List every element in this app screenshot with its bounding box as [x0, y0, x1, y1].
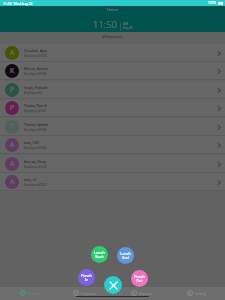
- staticText: T: [10, 122, 14, 132]
- staticText: 100%: [208, 1, 217, 5]
- button[interactable]: A: [0, 44, 225, 62]
- button[interactable]: P: [0, 99, 225, 117]
- staticText: Employee #1053: [24, 54, 47, 58]
- button[interactable]: A: [0, 136, 225, 154]
- staticText: Singh, Prakash: [24, 85, 48, 90]
- staticText: Employee #1029: [24, 183, 47, 187]
- staticText: aray, uT: [24, 177, 37, 182]
- staticText: 11:50 Wed Aug 28: [3, 1, 33, 6]
- staticText: Setting: [195, 291, 207, 296]
- button[interactable]: Lunch End: [117, 247, 134, 264]
- staticText: 11:50: [93, 18, 118, 31]
- staticText: Home: [107, 7, 118, 12]
- staticText: Punch In: [81, 273, 92, 282]
- staticText: Employee #1042: [24, 146, 47, 150]
- button[interactable]: A: [0, 173, 225, 191]
- staticText: A: [10, 177, 15, 187]
- staticText: Anurag, Bisoy: [24, 159, 46, 164]
- staticText: Chauhan, Ajay: [24, 48, 47, 53]
- button[interactable]: Setting: [169, 287, 225, 300]
- staticText: K: [10, 66, 15, 76]
- staticText: P: [10, 85, 15, 95]
- staticText: Aug 28: [123, 26, 133, 30]
- button[interactable]: P: [0, 81, 225, 99]
- button[interactable]: Punch Out: [131, 270, 148, 287]
- staticText: Lunch End: [120, 251, 131, 260]
- button[interactable]: Reports: [113, 287, 169, 300]
- button[interactable]: A: [0, 155, 225, 173]
- staticText: Employee #1046: [24, 128, 47, 132]
- button[interactable]: Home: [0, 287, 57, 300]
- button[interactable]: K: [0, 62, 225, 80]
- staticText: Employee: [81, 291, 97, 296]
- staticText: Punch Out: [134, 274, 145, 283]
- staticText: A: [10, 48, 15, 58]
- staticText: Employee #2: [24, 91, 42, 95]
- staticText: Employee #1044: [24, 72, 47, 76]
- staticText: Reports: [139, 291, 152, 296]
- staticText: Lunch Start: [94, 250, 105, 259]
- staticText: All Employees: [102, 35, 123, 39]
- button[interactable]: Lunch Start: [91, 246, 108, 263]
- staticText: AM: [123, 21, 129, 26]
- staticText: Employee #1041: [24, 109, 47, 113]
- button[interactable]: Employee: [57, 287, 113, 300]
- staticText: P: [10, 103, 15, 113]
- staticText: Home: [28, 291, 38, 296]
- staticText: Thakur, Piyush: [24, 103, 47, 108]
- button[interactable]: Close menu: [104, 276, 122, 294]
- staticText: aray, CEO: [24, 140, 40, 145]
- button[interactable]: Punch In: [78, 269, 95, 286]
- staticText: A: [10, 140, 15, 150]
- button[interactable]: T: [0, 118, 225, 136]
- staticText: Thakur, Upkesh: [24, 122, 49, 127]
- staticText: Employee #1024: [24, 165, 47, 169]
- staticText: A: [10, 159, 15, 169]
- staticText: Mishra, Kamini: [24, 66, 48, 71]
